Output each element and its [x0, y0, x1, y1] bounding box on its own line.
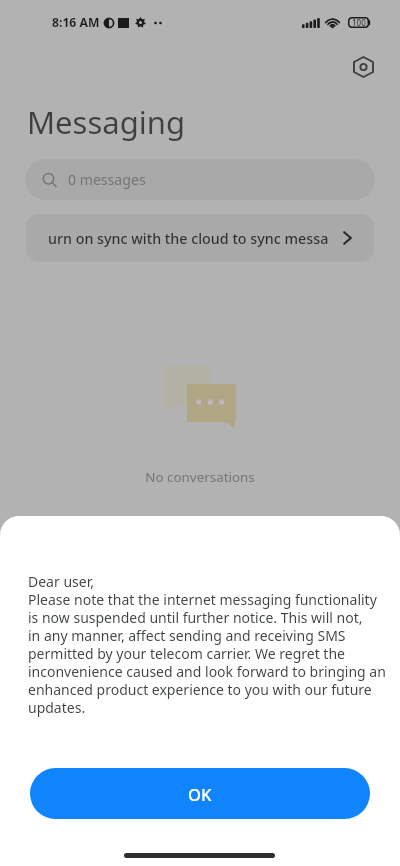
button[interactable]: 0 messages — [25, 159, 375, 200]
staticText: Dear user, Please note that the internet… — [28, 572, 386, 717]
staticText: 0 messages — [68, 170, 146, 189]
button[interactable]: urn on sync with the cloud to sync messa… — [26, 214, 374, 262]
staticText: OK — [188, 783, 212, 805]
staticText: No conversations — [0, 468, 400, 486]
staticText: 8:16 AM — [52, 14, 100, 31]
staticText: Messaging — [27, 101, 185, 143]
button[interactable]: Settings — [343, 46, 384, 87]
staticText: urn on sync with the cloud to sync messa… — [48, 229, 329, 248]
button[interactable]: OK — [30, 768, 370, 819]
staticText: 100 — [352, 17, 366, 28]
